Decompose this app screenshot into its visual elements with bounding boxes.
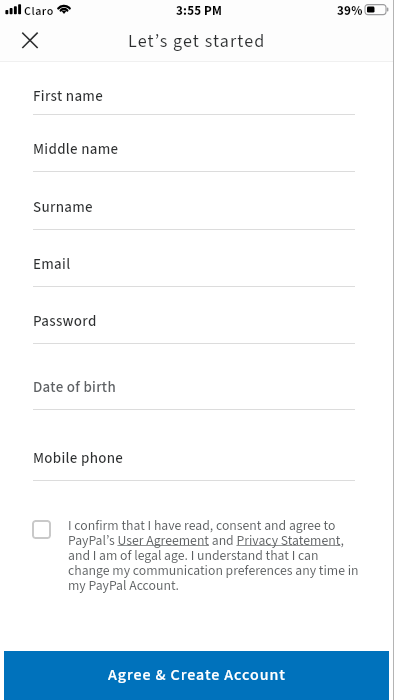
staticText: Password [33, 311, 97, 332]
other: I confirm checkbox [32, 520, 51, 539]
button[interactable]: Middle name [0, 115, 394, 172]
staticText: Date of birth [33, 377, 116, 398]
staticText: Email [33, 254, 71, 275]
button[interactable]: Date of birth [0, 344, 394, 410]
button[interactable]: Email [0, 230, 394, 287]
staticText: 39% [337, 2, 363, 21]
button[interactable]: Password [0, 287, 394, 344]
staticText: Middle name [33, 139, 119, 160]
staticText: 3:55 PM [176, 2, 223, 21]
button[interactable]: Agree & Create Account [4, 651, 389, 700]
staticText: First name [33, 86, 103, 103]
button[interactable]: Surname [0, 172, 394, 230]
staticText: Mobile phone [33, 448, 124, 469]
staticText: Claro [24, 3, 54, 20]
staticText: Let’s get started [128, 29, 266, 55]
staticText: Surname [33, 197, 93, 218]
button[interactable]: I confirm checkbox [32, 520, 364, 599]
staticText: I confirm that I have read, consent and … [68, 516, 361, 595]
button[interactable]: Close [11, 23, 48, 60]
button[interactable]: First name [0, 86, 394, 115]
button[interactable]: Mobile phone [0, 410, 394, 481]
staticText: Agree & Create Account [108, 664, 286, 687]
